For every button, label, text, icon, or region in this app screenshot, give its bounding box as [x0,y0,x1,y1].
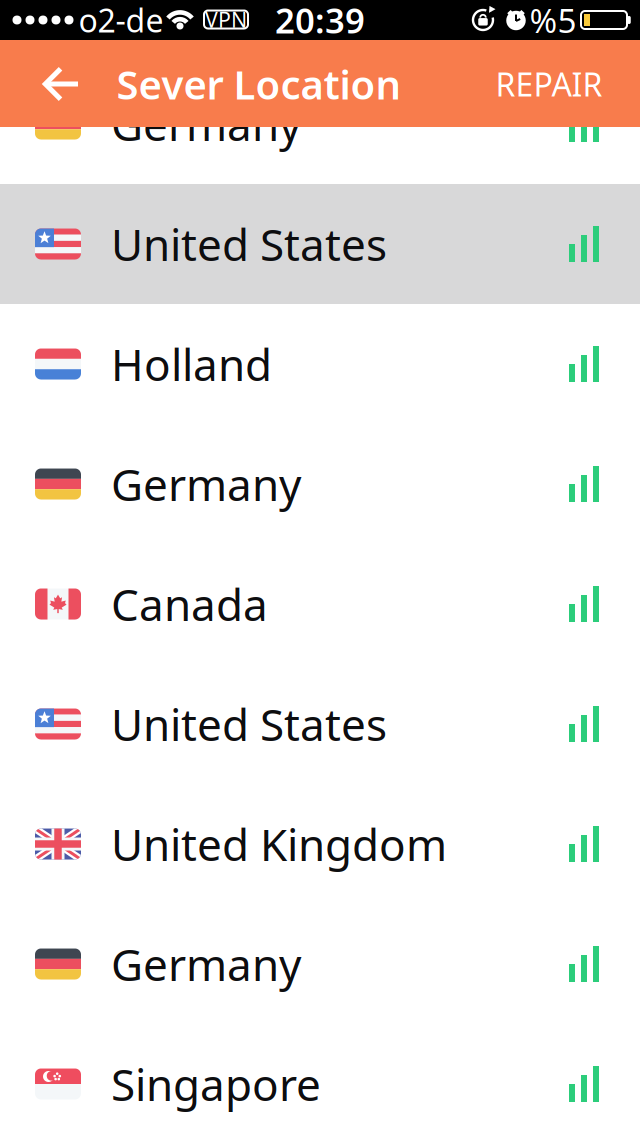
staticText: United States [111,215,387,273]
button[interactable]: Germany [0,64,640,184]
staticText: o2-de [78,0,163,41]
staticText: Canada [111,575,268,633]
staticText: VPN [205,5,247,34]
button[interactable]: United Kingdom [0,784,640,904]
button[interactable]: Canada [0,544,640,664]
staticText: Germany [111,935,301,993]
button[interactable]: VPN [204,10,248,28]
staticText: %5 [529,0,576,42]
staticText: REPAIR [495,63,602,105]
button[interactable] [43,67,81,101]
button[interactable]: Germany [0,904,640,1024]
staticText: Germany [111,455,301,513]
button[interactable]: REPAIR [495,63,602,105]
button[interactable]: Singapore [0,1024,640,1136]
button[interactable]: United States [0,664,640,784]
button[interactable]: Germany [0,424,640,544]
staticText: Holland [111,335,272,393]
staticText: Singapore [111,1055,321,1113]
staticText: Germany [111,95,301,153]
staticText: United States [111,695,387,753]
button[interactable]: United States [0,184,640,304]
staticText: United Kingdom [111,815,447,873]
staticText: 20:39 [275,0,365,43]
button[interactable]: Holland [0,304,640,424]
staticText: Sever Location [116,57,401,110]
